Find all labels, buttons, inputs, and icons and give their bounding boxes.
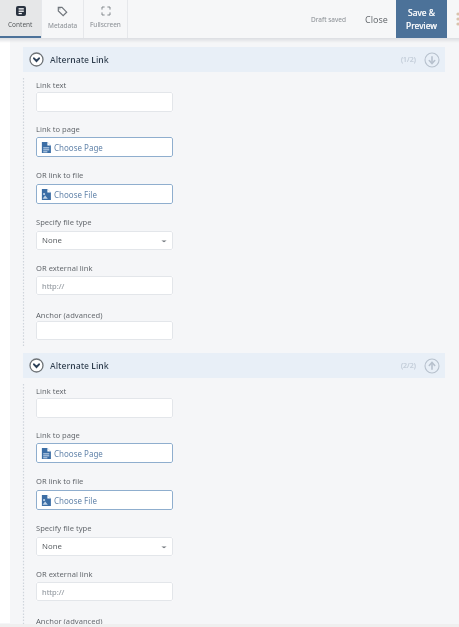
button[interactable] bbox=[36, 92, 173, 112]
button[interactable]: Save & Preview bbox=[396, 0, 447, 38]
staticText: Anchor (advanced) bbox=[36, 310, 103, 320]
button[interactable]: Choose Page bbox=[36, 443, 173, 463]
button[interactable]: Collapse section bbox=[29, 52, 44, 67]
staticText: Metadata bbox=[48, 21, 78, 30]
staticText: Link to page bbox=[36, 124, 80, 134]
staticText: OR link to file bbox=[36, 170, 84, 180]
staticText: (2/2) bbox=[401, 361, 416, 371]
staticText: Close bbox=[365, 13, 388, 25]
button[interactable]: Choose File bbox=[36, 184, 173, 204]
button[interactable]: Move down bbox=[424, 52, 440, 68]
button[interactable]: Content bbox=[0, 0, 41, 38]
staticText: None bbox=[42, 541, 62, 552]
button[interactable] bbox=[36, 321, 173, 340]
button[interactable]: None bbox=[36, 537, 173, 556]
staticText: (1/2) bbox=[401, 55, 416, 65]
button[interactable]: http:// bbox=[36, 582, 173, 601]
button[interactable]: Collapse section bbox=[23, 353, 445, 378]
staticText: Anchor (advanced) bbox=[36, 616, 103, 626]
button[interactable]: Metadata bbox=[42, 0, 83, 38]
button[interactable]: Collapse section bbox=[23, 47, 445, 72]
staticText: Specify file type bbox=[36, 217, 92, 227]
staticText: Fullscreen bbox=[90, 20, 121, 29]
staticText: Choose Page bbox=[54, 142, 103, 153]
button[interactable]: Choose Page bbox=[36, 137, 173, 157]
button[interactable]: http:// bbox=[36, 276, 173, 295]
staticText: Link text bbox=[36, 386, 67, 396]
staticText: Alternate Link bbox=[50, 360, 109, 372]
staticText: Choose File bbox=[54, 495, 97, 506]
staticText: Content bbox=[8, 20, 33, 29]
staticText: Specify file type bbox=[36, 523, 92, 533]
button[interactable]: Move up bbox=[424, 358, 440, 374]
button[interactable]: None bbox=[36, 231, 173, 250]
staticText: http:// bbox=[42, 587, 65, 597]
staticText: Choose File bbox=[54, 189, 97, 200]
button[interactable]: Choose File bbox=[36, 490, 173, 510]
staticText: Save & Preview bbox=[406, 7, 437, 31]
staticText: Alternate Link bbox=[50, 54, 109, 66]
staticText: Link text bbox=[36, 80, 67, 90]
button[interactable]: Collapse section bbox=[29, 358, 44, 373]
staticText: Draft saved bbox=[311, 15, 346, 24]
staticText: OR external link bbox=[36, 263, 93, 273]
staticText: Link to page bbox=[36, 430, 80, 440]
staticText: Choose Page bbox=[54, 448, 103, 459]
button[interactable]: Fullscreen bbox=[84, 0, 127, 38]
staticText: OR external link bbox=[36, 569, 93, 579]
button[interactable]: Close bbox=[365, 0, 388, 38]
staticText: http:// bbox=[42, 281, 65, 291]
staticText: OR link to file bbox=[36, 476, 84, 486]
button[interactable]: More options bbox=[449, 7, 459, 31]
staticText: None bbox=[42, 235, 62, 246]
button[interactable] bbox=[36, 398, 173, 418]
